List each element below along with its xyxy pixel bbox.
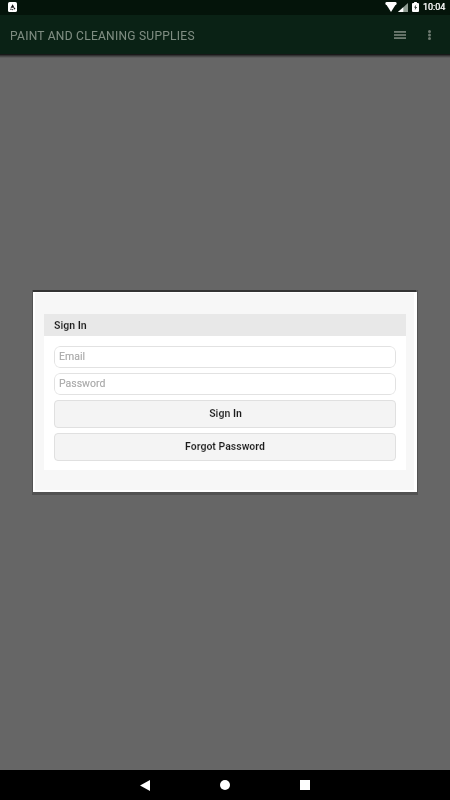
button[interactable]: More options: [415, 21, 443, 49]
button[interactable]: Recents: [290, 770, 320, 800]
button[interactable]: Password: [54, 373, 396, 395]
button[interactable]: Email: [54, 346, 396, 368]
staticText: Sign In: [54, 319, 87, 331]
button[interactable]: Sign In: [54, 400, 396, 428]
button[interactable]: Home: [210, 770, 240, 800]
staticText: 10:04: [423, 2, 446, 13]
button[interactable]: Menu: [386, 21, 414, 49]
staticText: Sign In: [209, 407, 242, 419]
staticText: Password: [59, 377, 106, 389]
staticText: PAINT AND CLEANING SUPPLIES: [10, 29, 195, 43]
button[interactable]: Forgot Password: [54, 433, 396, 461]
button[interactable]: Back: [130, 770, 160, 800]
staticText: Email: [59, 350, 85, 362]
staticText: Forgot Password: [185, 440, 265, 452]
